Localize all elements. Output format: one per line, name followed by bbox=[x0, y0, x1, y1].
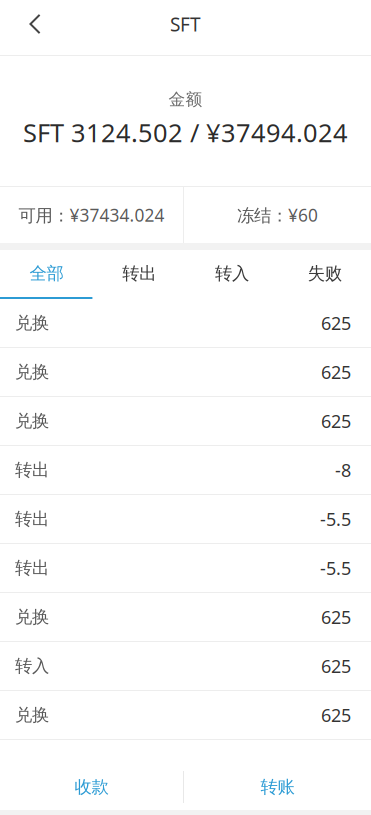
staticText: 全部 bbox=[29, 263, 63, 284]
staticText: SFT bbox=[170, 11, 201, 37]
button[interactable]: 转出 bbox=[0, 544, 371, 593]
staticText: 兑换 bbox=[15, 606, 49, 628]
staticText: 转入 bbox=[15, 655, 49, 677]
button[interactable]: 转出 bbox=[93, 250, 186, 299]
staticText: 金额 bbox=[168, 89, 202, 110]
staticText: 转入 bbox=[215, 263, 249, 284]
staticText: 兑换 bbox=[15, 312, 49, 334]
button[interactable]: 全部 bbox=[0, 250, 93, 299]
button[interactable]: 兑换 bbox=[0, 299, 371, 348]
staticText: 625 bbox=[321, 360, 351, 384]
button[interactable]: 兑换 bbox=[0, 691, 371, 740]
staticText: 转出 bbox=[122, 263, 156, 284]
staticText: 625 bbox=[321, 311, 351, 335]
staticText: 失败 bbox=[308, 263, 342, 284]
staticText: 兑换 bbox=[15, 410, 49, 432]
button[interactable]: 失败 bbox=[278, 250, 371, 299]
button[interactable]: 转账 bbox=[184, 740, 371, 810]
button[interactable]: 转入 bbox=[0, 642, 371, 691]
button[interactable]: 转入 bbox=[185, 250, 278, 299]
staticText: 625 bbox=[321, 703, 351, 727]
button[interactable]: 转出 bbox=[0, 495, 371, 544]
staticText: SFT 3124.502 / ¥37494.024 bbox=[23, 115, 348, 150]
staticText: 625 bbox=[321, 409, 351, 433]
staticText: 转账 bbox=[260, 776, 294, 798]
staticText: 可用：¥37434.024 bbox=[18, 203, 164, 227]
button[interactable]: Back bbox=[0, 2, 70, 46]
button[interactable]: 转出 bbox=[0, 446, 371, 495]
staticText: 转出 bbox=[15, 508, 49, 530]
staticText: 收款 bbox=[74, 776, 108, 798]
staticText: -5.5 bbox=[320, 507, 351, 531]
staticText: -5.5 bbox=[320, 556, 351, 580]
staticText: 转出 bbox=[15, 459, 49, 481]
staticText: 625 bbox=[321, 605, 351, 629]
button[interactable]: 兑换 bbox=[0, 348, 371, 397]
button[interactable]: 收款 bbox=[0, 740, 183, 810]
staticText: -8 bbox=[335, 458, 351, 482]
button[interactable]: 兑换 bbox=[0, 397, 371, 446]
staticText: 兑换 bbox=[15, 361, 49, 383]
staticText: 兑换 bbox=[15, 704, 49, 726]
staticText: 转出 bbox=[15, 557, 49, 579]
staticText: 625 bbox=[321, 654, 351, 678]
staticText: 冻结：¥60 bbox=[237, 203, 318, 227]
button[interactable]: 兑换 bbox=[0, 593, 371, 642]
